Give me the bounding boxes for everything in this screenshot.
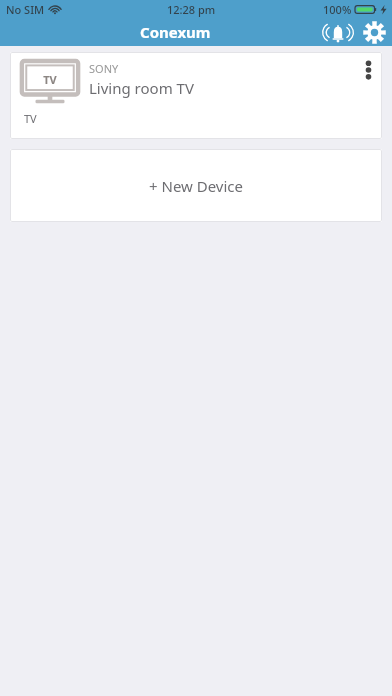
staticText: SONY (89, 61, 119, 76)
button[interactable]: More options (354, 61, 382, 101)
staticText: TV (43, 72, 57, 87)
staticText: No SIM (6, 2, 45, 17)
staticText: 12:28 pm (167, 2, 216, 17)
button[interactable]: Notifications (320, 18, 356, 46)
button[interactable]: Settings (356, 18, 392, 46)
staticText: 100% (323, 2, 352, 17)
staticText: TV (24, 111, 37, 126)
button[interactable]: TV (10, 52, 382, 139)
staticText: Conexum (140, 22, 211, 42)
button[interactable]: + New Device (10, 149, 382, 222)
staticText: Living room TV (89, 78, 194, 98)
staticText: + New Device (149, 176, 243, 196)
